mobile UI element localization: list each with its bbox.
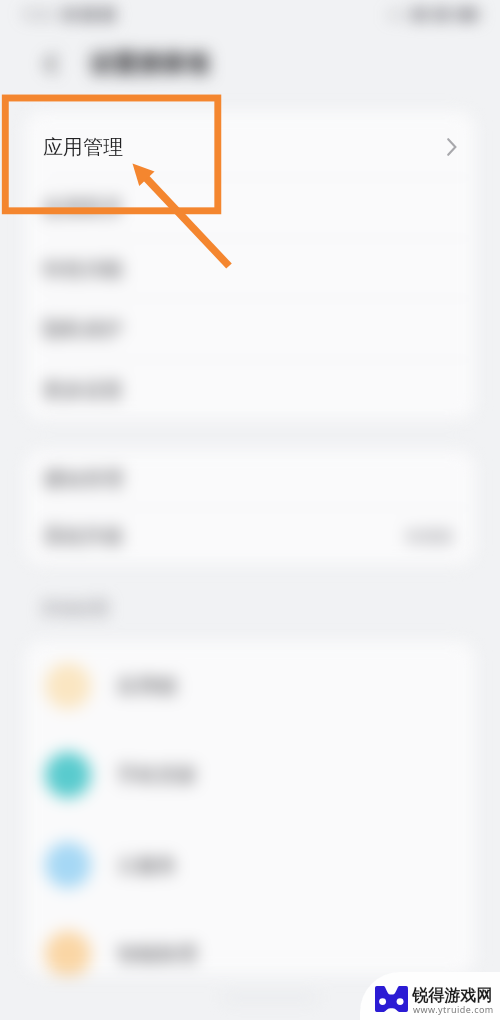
staticText: 应用双开 — [43, 196, 123, 221]
button[interactable]: 隐私保护 — [25, 299, 475, 360]
button[interactable]: 云服务 — [45, 835, 475, 895]
staticText: 手机管家 — [117, 763, 197, 788]
button[interactable]: 应用锁 — [45, 656, 475, 716]
staticText: 特色功能 — [43, 257, 123, 282]
button[interactable]: 应用双开 — [25, 178, 475, 239]
staticText: 锐得游戏网 — [412, 986, 492, 1006]
button[interactable]: 智能助理 — [45, 924, 475, 975]
button[interactable]: 手机管家 — [45, 745, 475, 805]
staticText: www.ytruide.com — [413, 1003, 494, 1015]
button[interactable] — [25, 111, 475, 178]
staticText: 设置搜索项 — [89, 49, 209, 79]
staticText: 其他设置 — [41, 598, 109, 619]
staticText: 有更新 — [405, 527, 453, 547]
staticText: 应用锁 — [117, 674, 177, 699]
button[interactable]: 应用管理 — [25, 111, 475, 178]
staticText: 更多设置 — [43, 378, 123, 403]
button[interactable]: 系统升级 — [25, 508, 475, 565]
button[interactable]: 特色功能 — [25, 239, 475, 299]
staticText: 隐私保护 — [43, 317, 123, 342]
staticText: 应用管理 — [43, 135, 123, 160]
staticText: 智能助理 — [117, 942, 197, 967]
staticText: 云服务 — [117, 853, 177, 878]
staticText: 系统升级 — [43, 524, 123, 549]
staticText: 通知管理 — [43, 467, 123, 492]
button[interactable]: 通知管理 — [25, 450, 475, 508]
button[interactable]: 更多设置 — [25, 360, 475, 420]
